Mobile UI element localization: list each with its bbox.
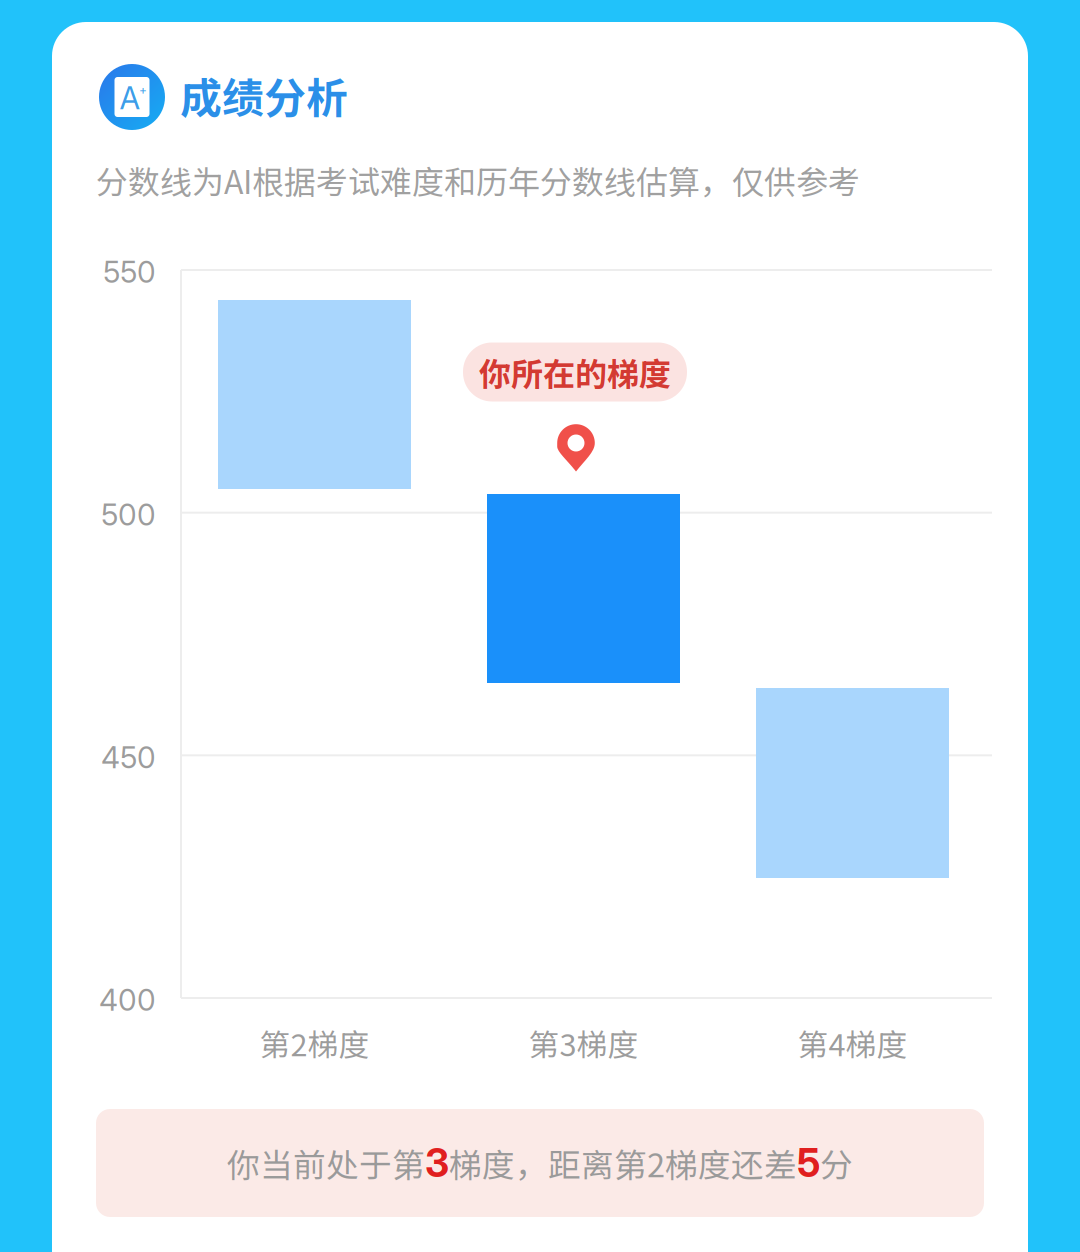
staticText: 梯度，距离第2梯度还差: [449, 1139, 797, 1187]
button[interactable]: A: [99, 62, 981, 132]
staticText: 550: [103, 254, 156, 290]
staticText: 3: [425, 1140, 449, 1186]
staticText: 分: [820, 1139, 853, 1187]
staticText: 你所在的梯度: [479, 349, 671, 395]
staticText: 500: [101, 497, 156, 533]
staticText: 450: [101, 739, 156, 775]
staticText: +: [139, 83, 147, 97]
staticText: 第4梯度: [797, 1021, 907, 1065]
button[interactable]: 你当前处于第: [96, 1109, 984, 1217]
staticText: 5: [797, 1140, 820, 1186]
staticText: 第2梯度: [259, 1021, 369, 1065]
staticText: 400: [99, 982, 156, 1018]
staticText: 你当前处于第: [227, 1139, 425, 1187]
staticText: 第3梯度: [528, 1021, 638, 1065]
staticText: A: [119, 79, 140, 116]
staticText: 成绩分析: [180, 65, 348, 125]
staticText: 分数线为AI根据考试难度和历年分数线估算，仅供参考: [96, 157, 860, 203]
